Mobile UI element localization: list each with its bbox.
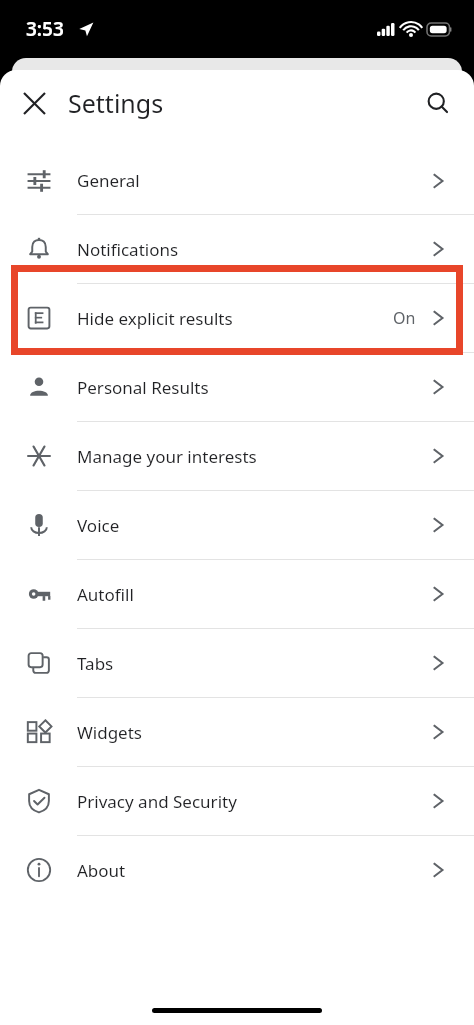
staticText: On (393, 307, 416, 329)
button[interactable]: Hide explicit results (0, 284, 474, 352)
button[interactable]: Notifications (0, 215, 474, 283)
staticText: 3:53 (26, 16, 64, 42)
button[interactable]: About (0, 836, 474, 904)
button[interactable]: Close (12, 81, 56, 125)
staticText: Notifications (77, 238, 179, 261)
button[interactable]: Autofill (0, 560, 474, 628)
staticText: About (77, 859, 126, 882)
button[interactable]: Search (416, 81, 460, 125)
staticText: Autofill (77, 583, 134, 606)
staticText: Tabs (77, 652, 114, 675)
button[interactable]: Tabs (0, 629, 474, 697)
button[interactable]: Personal Results (0, 353, 474, 421)
staticText: Voice (77, 514, 120, 537)
button[interactable]: Voice (0, 491, 474, 559)
staticText: Hide explicit results (77, 307, 233, 330)
button[interactable]: General (0, 147, 474, 214)
staticText: General (77, 169, 140, 192)
staticText: Manage your interests (77, 445, 257, 468)
staticText: Settings (68, 86, 164, 120)
staticText: Personal Results (77, 376, 209, 399)
staticText: Privacy and Security (77, 790, 237, 813)
button[interactable]: Manage your interests (0, 422, 474, 490)
button[interactable]: Widgets (0, 698, 474, 766)
staticText: Widgets (77, 721, 142, 744)
button[interactable]: Privacy and Security (0, 767, 474, 835)
